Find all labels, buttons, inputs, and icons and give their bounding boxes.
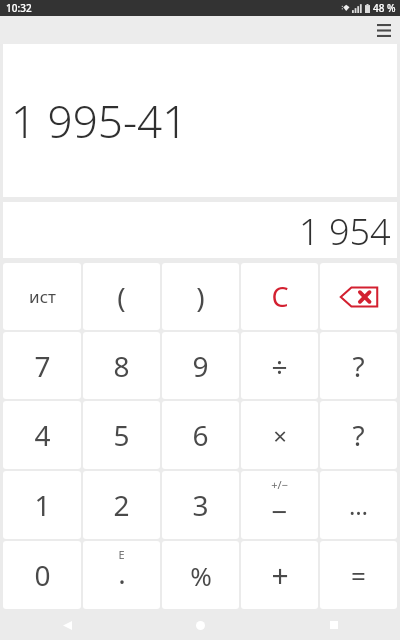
staticText: 3 (192, 486, 209, 524)
staticText: 2 (113, 486, 130, 524)
button[interactable]: ? (320, 332, 397, 399)
staticText: 1 954 (299, 207, 391, 256)
button[interactable]: 0 (3, 541, 81, 609)
staticText: 8 (113, 347, 130, 385)
staticText: 4 (34, 416, 51, 454)
button[interactable]: ) (162, 263, 239, 330)
staticText: E (118, 547, 125, 562)
button[interactable]: ? (320, 401, 397, 469)
staticText: ист (29, 285, 56, 308)
staticText: +/− (271, 477, 288, 492)
staticText: 10:32 (6, 1, 32, 15)
staticText: … (349, 489, 368, 522)
staticText: · (118, 562, 126, 600)
button[interactable]: + (241, 541, 318, 609)
staticText: × (273, 419, 287, 452)
staticText: 6 (192, 416, 209, 454)
staticText: ÷ (271, 347, 288, 385)
button[interactable]: 6 (162, 401, 239, 469)
button[interactable]: … (320, 471, 397, 539)
button[interactable]: 9 (162, 332, 239, 399)
staticText: ? (352, 347, 365, 385)
staticText: ? (352, 416, 365, 454)
button[interactable]: Backspace (320, 263, 397, 330)
staticText: 48 % (373, 1, 396, 15)
button[interactable]: × (241, 401, 318, 469)
button[interactable]: 1 (3, 471, 81, 539)
staticText: 1 (34, 486, 51, 524)
button[interactable]: 5 (83, 401, 160, 469)
button[interactable]: ( (83, 263, 160, 330)
button[interactable]: = (320, 541, 397, 609)
staticText: 5 (113, 416, 130, 454)
button[interactable]: 1 995-41 (3, 44, 397, 197)
staticText: 7 (34, 347, 51, 385)
button[interactable]: C (241, 263, 318, 330)
button[interactable]: 3 (162, 471, 239, 539)
button[interactable]: 8 (83, 332, 160, 399)
button[interactable]: ист (3, 263, 81, 330)
staticText: = (351, 558, 366, 593)
button[interactable]: E (83, 541, 160, 609)
staticText: 9 (192, 347, 209, 385)
staticText: + (271, 555, 289, 596)
button[interactable]: 1 954 (3, 202, 397, 258)
staticText: 1 995-41 (11, 91, 188, 151)
button[interactable]: 2 (83, 471, 160, 539)
button[interactable]: +/− (241, 471, 318, 539)
staticText: C (271, 278, 289, 315)
staticText: − (271, 492, 288, 530)
button[interactable]: ÷ (241, 332, 318, 399)
staticText: 0 (34, 556, 51, 594)
button[interactable]: % (162, 541, 239, 609)
staticText: ) (196, 278, 205, 316)
button[interactable]: Menu (371, 17, 397, 43)
staticText: % (190, 558, 212, 593)
button[interactable]: 7 (3, 332, 81, 399)
staticText: ( (117, 278, 126, 316)
button[interactable]: 4 (3, 401, 81, 469)
